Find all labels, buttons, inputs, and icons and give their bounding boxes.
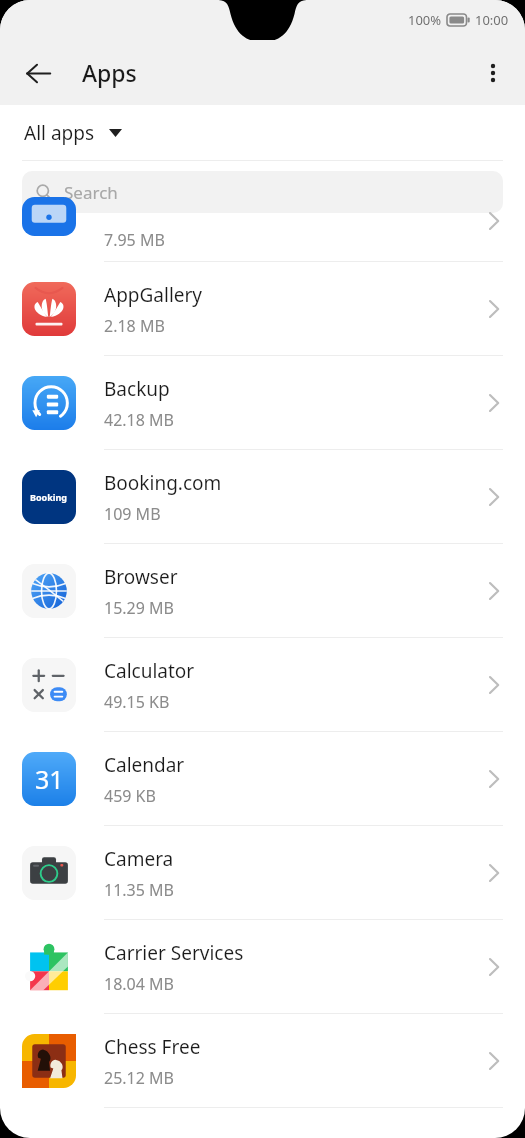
staticText: 11.35 MB: [104, 879, 174, 901]
staticText: 42.18 MB: [104, 409, 174, 431]
staticText: 49.15 KB: [104, 691, 170, 713]
staticText: 2.18 MB: [104, 315, 165, 337]
staticText: All apps: [24, 120, 95, 146]
button[interactable]: AppGallery: [0, 262, 525, 356]
staticText: 100%: [408, 11, 442, 29]
staticText: Browser: [104, 564, 178, 590]
button[interactable]: Browser: [0, 544, 525, 638]
button[interactable]: Carrier Services: [0, 920, 525, 1014]
button[interactable]: Booking: [0, 450, 525, 544]
staticText: 10:00: [475, 11, 509, 29]
staticText: Apps: [82, 57, 137, 88]
staticText: Backup: [104, 376, 170, 402]
staticText: 459 KB: [104, 785, 156, 807]
staticText: AppGallery: [104, 282, 203, 308]
staticText: 18.04 MB: [104, 973, 174, 995]
button[interactable]: Backup: [0, 356, 525, 450]
staticText: Search: [64, 181, 118, 204]
staticText: Booking: [30, 491, 68, 503]
button[interactable]: More options: [469, 49, 517, 97]
button[interactable]: Camera: [0, 826, 525, 920]
button[interactable]: Chess Free: [0, 1014, 525, 1108]
staticText: 31: [35, 762, 64, 796]
staticText: Carrier Services: [104, 940, 244, 966]
staticText: 15.29 MB: [104, 597, 174, 619]
staticText: Booking.com: [104, 470, 222, 496]
staticText: 25.12 MB: [104, 1067, 174, 1089]
staticText: Camera: [104, 846, 174, 872]
button[interactable]: All apps: [18, 116, 128, 150]
button[interactable]: Search: [22, 171, 503, 213]
staticText: 7.95 MB: [104, 229, 165, 251]
staticText: 109 MB: [104, 503, 161, 525]
button[interactable]: 7.95 MB: [0, 223, 525, 262]
button[interactable]: Back: [12, 47, 64, 99]
button[interactable]: 31: [0, 732, 525, 826]
staticText: Chess Free: [104, 1034, 201, 1060]
staticText: Calculator: [104, 658, 195, 684]
staticText: Calendar: [104, 752, 185, 778]
button[interactable]: Calculator: [0, 638, 525, 732]
